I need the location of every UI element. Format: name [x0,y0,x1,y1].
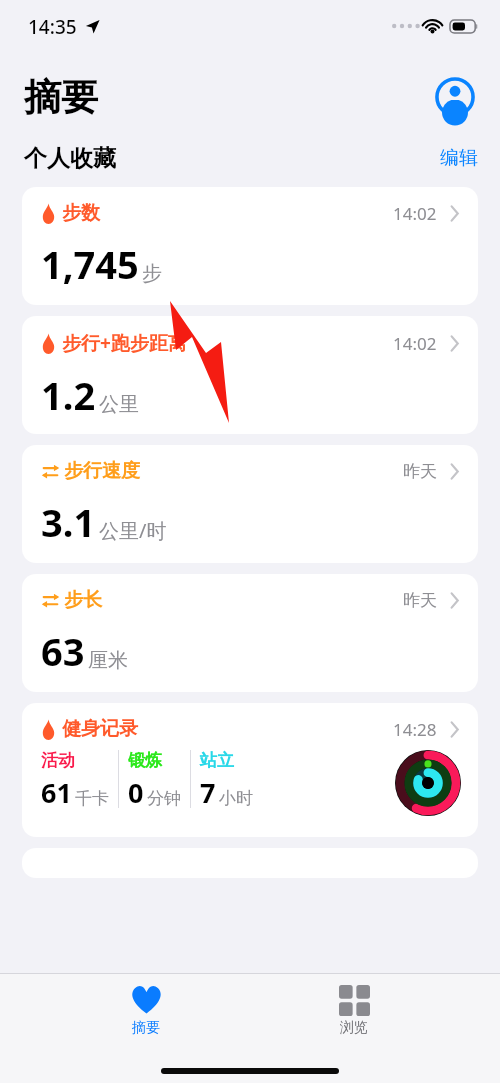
staticText: 步行+跑步距离 [62,330,187,356]
staticText: 1.2 [41,369,96,421]
staticText: 1,745 [41,238,139,290]
staticText: 63 [41,625,85,677]
staticText: 分钟 [147,788,181,809]
staticText: 小时 [219,788,253,809]
staticText: 步长 [64,588,102,612]
staticText: 14:35 [28,14,77,40]
staticText: 摘要 [132,1019,160,1037]
staticText: 编辑 [440,146,478,170]
staticText: 61 [41,774,72,811]
button[interactable]: 步行+跑步距离 [22,316,478,434]
button[interactable]: 步行速度 [22,445,478,563]
button[interactable]: 步长 [22,574,478,692]
staticText: 千卡 [75,788,109,809]
staticText: 健身记录 [62,717,138,741]
button[interactable]: 摘要 [93,981,199,1041]
staticText: 公里 [99,392,139,417]
staticText: 0 [128,774,144,811]
staticText: 昨天 [403,461,437,482]
staticText: 步数 [62,201,100,225]
button[interactable]: Profile [434,76,476,118]
button[interactable]: 健身记录 [22,703,478,837]
button[interactable]: 步数 [22,187,478,305]
staticText: 浏览 [340,1019,368,1037]
staticText: 步行速度 [64,459,140,483]
staticText: 锻炼 [128,750,162,771]
staticText: 个人收藏 [24,144,116,173]
staticText: 厘米 [88,648,128,673]
staticText: 14:02 [393,332,437,355]
button[interactable]: 编辑 [438,142,480,174]
staticText: 3.1 [41,496,96,548]
staticText: 步 [142,261,162,286]
staticText: 14:02 [393,202,437,225]
staticText: 14:28 [393,718,437,741]
staticText: 7 [200,774,216,811]
staticText: 公里/时 [99,517,167,544]
staticText: 昨天 [403,590,437,611]
button[interactable]: 浏览 [301,981,407,1041]
staticText: 活动 [41,750,75,771]
staticText: 站立 [200,750,234,771]
staticText: 摘要 [24,74,98,121]
